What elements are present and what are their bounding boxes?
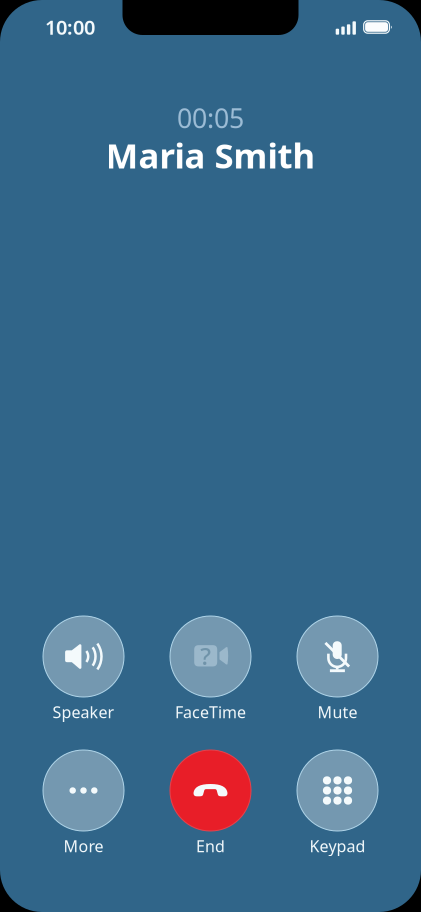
staticText: End: [196, 835, 225, 857]
staticText: Maria Smith: [105, 132, 315, 178]
button[interactable]: More: [20, 750, 147, 855]
button[interactable]: Speaker: [20, 616, 147, 721]
button[interactable]: Mute: [274, 616, 401, 721]
button[interactable]: Keypad: [274, 750, 401, 855]
button[interactable]: ?: [147, 616, 274, 721]
staticText: Speaker: [52, 701, 114, 723]
staticText: More: [63, 835, 103, 857]
staticText: 10:00: [45, 14, 95, 40]
staticText: ?: [200, 640, 211, 672]
staticText: Mute: [317, 701, 357, 723]
staticText: 00:05: [177, 100, 244, 136]
button[interactable]: End: [147, 750, 274, 855]
staticText: FaceTime: [175, 701, 246, 723]
staticText: Keypad: [309, 835, 365, 857]
